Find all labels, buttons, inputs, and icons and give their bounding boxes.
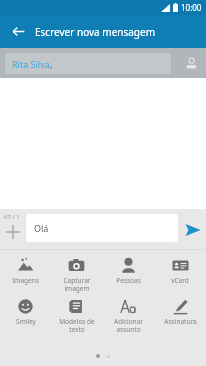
button[interactable]: Add contact <box>179 51 203 75</box>
staticText: 67 / 1 <box>4 213 20 221</box>
button[interactable]: Capturar imagem <box>51 256 102 294</box>
button[interactable]: Send <box>181 218 205 242</box>
button[interactable]: Smiley <box>0 297 51 327</box>
staticText: Escrever nova mensagem <box>35 25 155 39</box>
staticText: Smiley <box>16 317 36 326</box>
button[interactable]: Olá <box>26 214 178 242</box>
button[interactable]: vCard <box>154 256 206 286</box>
staticText: Assinatura <box>164 317 197 326</box>
button[interactable]: Assinatura <box>154 297 206 327</box>
staticText: Olá <box>34 222 49 234</box>
staticText: Modelos de texto <box>59 317 95 334</box>
staticText: Capturar imagem <box>63 276 91 293</box>
staticText: Rita Silva <box>12 58 50 70</box>
staticText: Imagens <box>12 276 39 285</box>
button[interactable]: Rita Silva <box>5 53 171 74</box>
button[interactable]: Modelos de texto <box>51 297 102 335</box>
button[interactable]: Adicionar assunto <box>102 297 154 335</box>
button[interactable]: Add attachment <box>2 221 24 243</box>
button[interactable]: Pessoas <box>102 256 154 286</box>
staticText: Adicionar assunto <box>114 317 143 334</box>
staticText: Pessoas <box>116 276 141 285</box>
staticText: vCard <box>171 276 189 285</box>
staticText: , <box>50 58 53 70</box>
button[interactable]: Imagens <box>0 256 51 286</box>
button[interactable]: Back <box>7 20 30 43</box>
staticText: 10:00 <box>181 2 202 13</box>
